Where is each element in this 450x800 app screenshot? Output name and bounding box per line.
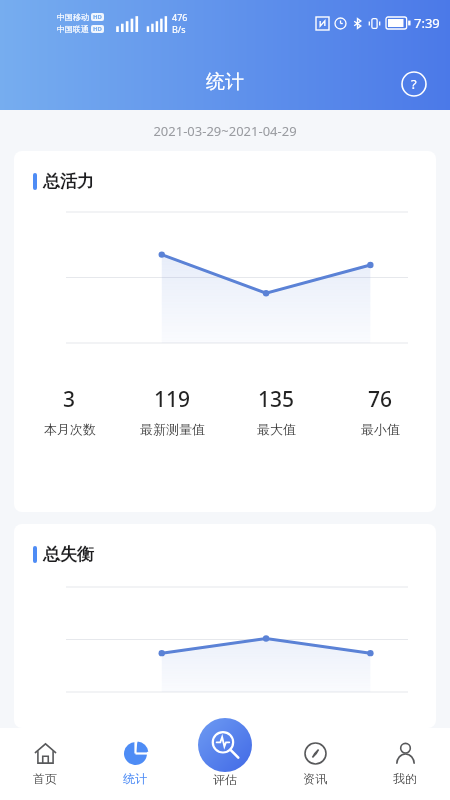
button[interactable]: 总失衡 — [14, 524, 436, 728]
staticText: HD — [93, 25, 102, 33]
staticText: 最小值 — [361, 421, 400, 437]
staticText: 总活力 — [43, 171, 94, 192]
button[interactable]: 119 — [121, 385, 224, 437]
button[interactable]: Help — [398, 68, 430, 100]
button[interactable]: 统计 — [90, 728, 180, 800]
button[interactable]: 135 — [224, 385, 328, 437]
staticText: 最新测量值 — [140, 421, 205, 437]
staticText: 资讯 — [303, 771, 327, 786]
button[interactable]: 资讯 — [270, 728, 360, 800]
button[interactable]: 76 — [328, 385, 432, 437]
staticText: 中国联通 — [57, 24, 89, 34]
button[interactable]: 我的 — [360, 728, 450, 800]
staticText: 3 — [63, 385, 76, 414]
button[interactable]: 首页 — [0, 728, 90, 800]
staticText: B/s — [172, 23, 186, 35]
button[interactable]: 评估 — [198, 718, 252, 772]
staticText: 135 — [258, 385, 295, 414]
staticText: 中国移动 — [57, 12, 89, 22]
staticText: 2021-03-29~2021-04-29 — [0, 122, 450, 140]
button[interactable]: 3 — [18, 385, 121, 437]
staticText: 总失衡 — [43, 544, 94, 565]
staticText: ? — [411, 75, 417, 93]
staticText: 476 — [172, 11, 188, 23]
staticText: 首页 — [33, 771, 57, 786]
staticText: 76 — [368, 385, 393, 414]
button[interactable]: 总活力 — [14, 151, 436, 512]
staticText: 统计 — [123, 771, 147, 786]
staticText: 评估 — [213, 772, 237, 787]
staticText: 统计 — [206, 70, 244, 94]
staticText: HD — [93, 13, 102, 21]
button[interactable]: 评估 — [180, 728, 270, 800]
staticText: 7:39 — [414, 14, 440, 32]
staticText: 我的 — [393, 771, 417, 786]
staticText: 本月次数 — [44, 421, 96, 437]
staticText: 119 — [154, 385, 191, 414]
staticText: 最大值 — [257, 421, 296, 437]
